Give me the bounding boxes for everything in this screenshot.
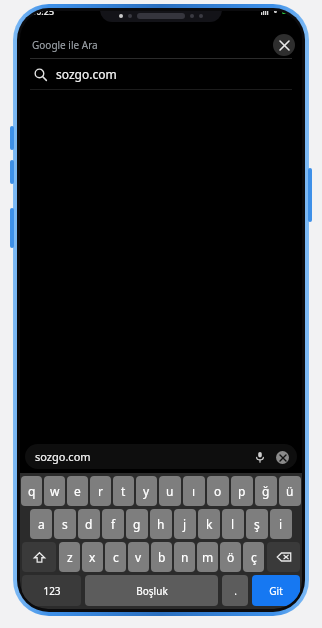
staticText: k [206, 516, 213, 532]
other: Volume down [10, 160, 14, 184]
staticText: l [231, 516, 235, 532]
staticText: u [166, 483, 174, 499]
staticText: r [98, 483, 103, 499]
button[interactable]: y [136, 476, 157, 506]
button[interactable]: j [174, 509, 196, 539]
staticText: . [234, 584, 237, 598]
button[interactable]: . [222, 575, 248, 606]
button[interactable]: x [82, 542, 103, 572]
button[interactable]: Shift [22, 542, 56, 572]
button[interactable]: Git [252, 575, 300, 606]
staticText: q [28, 483, 36, 499]
staticText: h [157, 516, 165, 532]
staticText: ö [227, 549, 235, 565]
staticText: 123 [43, 584, 61, 598]
button[interactable]: w [44, 476, 65, 506]
button[interactable]: Voice search [253, 450, 267, 464]
button[interactable]: t [113, 476, 134, 506]
other: Power [10, 208, 14, 248]
button[interactable]: i [270, 509, 292, 539]
button[interactable]: d [78, 509, 100, 539]
button[interactable]: ş [246, 509, 268, 539]
staticText: e [74, 483, 81, 499]
button[interactable]: c [105, 542, 126, 572]
other: Side button [308, 168, 312, 222]
staticText: c [113, 549, 119, 565]
button[interactable]: sozgo.com [25, 444, 297, 469]
button[interactable]: Backspace [267, 542, 300, 572]
staticText: j [183, 516, 187, 532]
staticText: a [38, 516, 45, 532]
button[interactable]: g [126, 509, 148, 539]
button[interactable]: v [128, 542, 149, 572]
staticText: sozgo.com [35, 449, 91, 464]
button[interactable]: u [159, 476, 181, 506]
button[interactable]: Boşluk [85, 575, 218, 606]
button[interactable]: a [30, 509, 52, 539]
staticText: y [143, 483, 150, 499]
staticText: w [50, 483, 60, 499]
button[interactable]: k [198, 509, 220, 539]
button[interactable]: ğ [255, 476, 277, 506]
staticText: Git [269, 584, 283, 598]
button[interactable]: s [54, 509, 76, 539]
staticText: ş [254, 516, 260, 532]
button[interactable]: sozgo.com [30, 59, 292, 89]
staticText: z [67, 549, 73, 565]
staticText: ğ [262, 483, 270, 499]
button[interactable]: ö [220, 542, 241, 572]
staticText: Google ile Ara [32, 38, 98, 52]
button[interactable]: l [222, 509, 244, 539]
button[interactable]: n [174, 542, 195, 572]
staticText: d [85, 516, 93, 532]
button[interactable]: b [151, 542, 172, 572]
button[interactable]: p [231, 476, 253, 506]
button[interactable]: ı [183, 476, 205, 506]
staticText: t [121, 483, 126, 499]
staticText: f [111, 516, 116, 532]
button[interactable]: ç [243, 542, 264, 572]
staticText: v [135, 549, 142, 565]
staticText: ı [192, 483, 196, 499]
staticText: sozgo.com [56, 66, 117, 82]
button[interactable]: m [197, 542, 218, 572]
staticText: 00:25 [31, 11, 55, 17]
staticText: b [158, 549, 166, 565]
staticText: g [133, 516, 141, 532]
staticText: Boşluk [136, 584, 168, 598]
button[interactable]: h [150, 509, 172, 539]
button[interactable]: z [59, 542, 80, 572]
staticText: ç [251, 549, 257, 565]
staticText: m [202, 549, 214, 565]
button[interactable]: Close [273, 34, 295, 56]
button[interactable]: e [67, 476, 88, 506]
staticText: o [214, 483, 222, 499]
staticText: n [181, 549, 189, 565]
button[interactable]: f [102, 509, 124, 539]
staticText: i [279, 516, 283, 532]
button[interactable]: o [207, 476, 229, 506]
button[interactable]: r [90, 476, 111, 506]
button[interactable]: 123 [22, 575, 81, 606]
other: Volume up [10, 126, 14, 150]
staticText: x [89, 549, 96, 565]
staticText: p [238, 483, 246, 499]
staticText: ü [286, 483, 294, 499]
button[interactable]: ü [279, 476, 301, 506]
button[interactable]: q [21, 476, 42, 506]
button[interactable]: Clear [276, 451, 289, 464]
staticText: s [62, 516, 68, 532]
